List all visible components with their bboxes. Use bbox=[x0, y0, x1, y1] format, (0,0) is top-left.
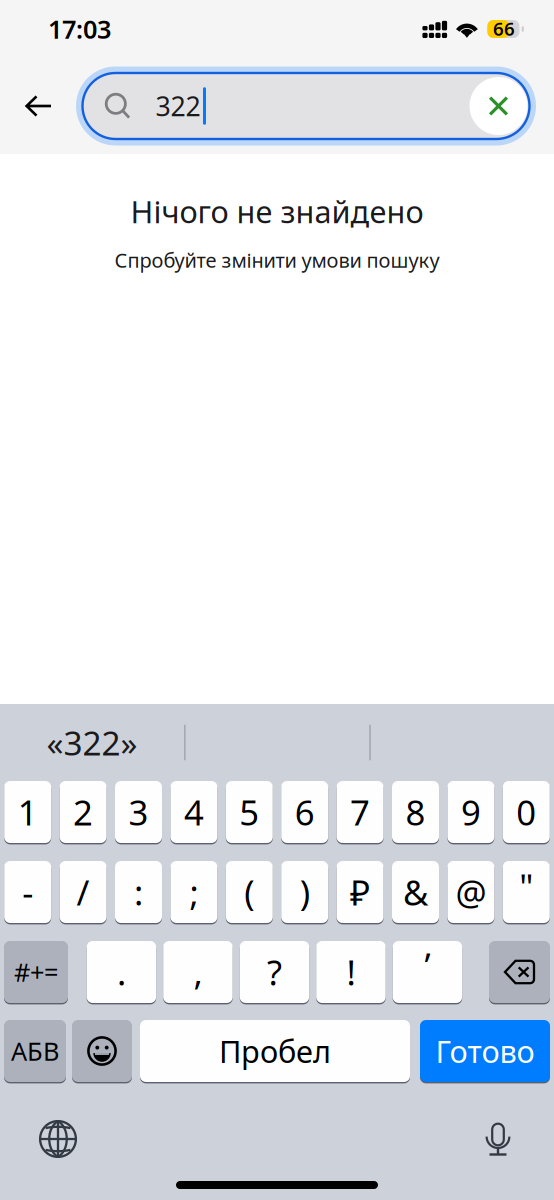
staticText: ’ bbox=[424, 942, 430, 988]
button[interactable]: Dictation bbox=[483, 1121, 513, 1157]
staticText: . bbox=[117, 949, 126, 995]
button[interactable]: ’ bbox=[393, 941, 462, 1003]
button[interactable]: ) bbox=[281, 861, 328, 923]
button[interactable]: 5 bbox=[226, 781, 273, 843]
button[interactable]: 8 bbox=[392, 781, 439, 843]
staticText: 0 bbox=[516, 789, 536, 835]
staticText: ) bbox=[300, 869, 310, 915]
button[interactable]: @ bbox=[447, 861, 494, 923]
staticText: 6 bbox=[295, 789, 315, 835]
staticText: АБВ bbox=[11, 1034, 59, 1068]
staticText: & bbox=[403, 869, 428, 915]
staticText: ( bbox=[244, 869, 254, 915]
button[interactable]: Next keyboard bbox=[39, 1120, 77, 1158]
button[interactable]: : bbox=[115, 861, 162, 923]
staticText: 8 bbox=[405, 789, 425, 835]
staticText: «322» bbox=[46, 720, 137, 765]
staticText: Нічого не знайдено bbox=[130, 191, 423, 232]
button[interactable]: 4 bbox=[170, 781, 217, 843]
staticText: ! bbox=[346, 949, 355, 995]
staticText: Спробуйте змінити умови пошуку bbox=[114, 247, 439, 273]
button[interactable]: . bbox=[87, 941, 156, 1003]
button[interactable]: ( bbox=[226, 861, 273, 923]
staticText: , bbox=[193, 949, 202, 995]
staticText: 2 bbox=[73, 789, 93, 835]
button[interactable]: Пробел bbox=[140, 1020, 410, 1082]
button[interactable]: ₽ bbox=[337, 861, 384, 923]
button[interactable]: Backspace bbox=[489, 941, 550, 1003]
staticText: 3 bbox=[128, 789, 148, 835]
staticText: Готово bbox=[435, 1031, 534, 1071]
button[interactable]: 3 bbox=[115, 781, 162, 843]
button[interactable]: «322» bbox=[0, 716, 184, 768]
staticText: " bbox=[519, 863, 533, 909]
button[interactable]: АБВ bbox=[4, 1020, 66, 1082]
staticText: ; bbox=[189, 869, 198, 915]
button[interactable]: 9 bbox=[447, 781, 494, 843]
staticText: 4 bbox=[184, 789, 204, 835]
staticText: - bbox=[22, 869, 33, 915]
button[interactable]: 7 bbox=[337, 781, 384, 843]
button[interactable]: 2 bbox=[60, 781, 107, 843]
button[interactable]: , bbox=[163, 941, 233, 1003]
button[interactable]: Back bbox=[0, 58, 76, 154]
button[interactable]: Emoji bbox=[72, 1020, 132, 1082]
staticText: 66 bbox=[493, 16, 515, 41]
button[interactable]: / bbox=[60, 861, 107, 923]
staticText: 17:03 bbox=[48, 12, 111, 46]
button[interactable]: 1 bbox=[4, 781, 51, 843]
staticText: 9 bbox=[461, 789, 481, 835]
button[interactable]: #+= bbox=[4, 941, 68, 1003]
button[interactable]: ? bbox=[240, 941, 309, 1003]
staticText: @ bbox=[455, 869, 486, 915]
staticText: 7 bbox=[350, 789, 370, 835]
staticText: ? bbox=[267, 949, 282, 995]
staticText: 5 bbox=[239, 789, 259, 835]
staticText: Пробел bbox=[219, 1031, 331, 1071]
staticText: ₽ bbox=[350, 869, 370, 915]
staticText: 1 bbox=[18, 789, 38, 835]
staticText: : bbox=[134, 869, 143, 915]
button[interactable]: " bbox=[503, 861, 550, 923]
button[interactable]: Clear bbox=[469, 77, 527, 135]
button[interactable]: Готово bbox=[420, 1020, 550, 1082]
button[interactable]: & bbox=[392, 861, 439, 923]
button[interactable]: ! bbox=[316, 941, 386, 1003]
button[interactable]: 6 bbox=[281, 781, 328, 843]
staticText: 322 bbox=[155, 88, 200, 124]
staticText: / bbox=[77, 869, 90, 915]
button[interactable]: - bbox=[4, 861, 51, 923]
staticText: #+= bbox=[14, 955, 58, 989]
button[interactable]: 0 bbox=[503, 781, 550, 843]
button[interactable]: ; bbox=[170, 861, 217, 923]
